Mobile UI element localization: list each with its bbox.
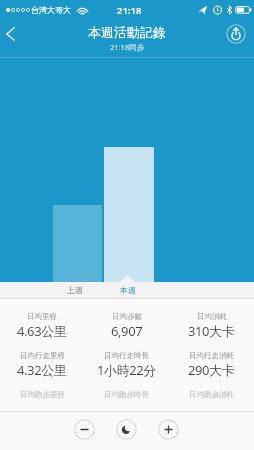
button[interactable]: 本週 [108, 282, 148, 298]
staticText: 日均跑步時長 [104, 390, 149, 399]
staticText: 6,907 [111, 322, 143, 340]
staticText: 日均行走消耗 [189, 351, 234, 360]
staticText: 日均跑步里程 [20, 390, 65, 399]
staticText: 日均里程 [27, 312, 57, 321]
staticText: 日均消耗 [197, 312, 227, 321]
button[interactable] [0, 24, 20, 44]
staticText: 上週 [67, 285, 83, 295]
staticText: 1小時22分 [97, 361, 156, 379]
button[interactable]: 上週 [55, 282, 95, 298]
staticText: 本週活動記錄 [88, 24, 166, 40]
staticText: 台湾大哥大 [31, 5, 71, 15]
button[interactable] [116, 419, 137, 440]
staticText: 4.32公里 [17, 361, 67, 379]
staticText: 日均步數 [112, 312, 142, 321]
staticText: 310大卡 [188, 322, 235, 340]
staticText: 日均跑步消耗 [189, 390, 234, 399]
button[interactable] [224, 22, 247, 45]
staticText: 日均行走里程 [20, 351, 65, 360]
staticText: 4.63公里 [17, 322, 67, 340]
staticText: 290大卡 [188, 361, 235, 379]
staticText: 本週 [120, 285, 136, 295]
button[interactable] [74, 419, 95, 440]
staticText: 21:18同步 [110, 42, 145, 52]
staticText: 日均行走時長 [104, 351, 149, 360]
button[interactable] [158, 419, 179, 440]
staticText: 21:18 [117, 4, 142, 17]
